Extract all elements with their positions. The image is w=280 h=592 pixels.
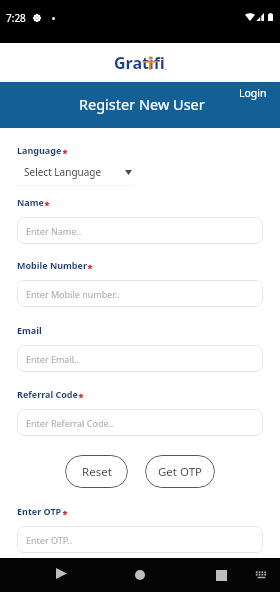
staticText: Select Language <box>24 165 102 179</box>
staticText: Language <box>17 144 62 156</box>
button[interactable]: Reset <box>65 455 128 488</box>
button[interactable]: Enter Name.. <box>17 217 263 244</box>
staticText: . <box>165 63 167 73</box>
staticText: Mobile Number <box>17 259 87 271</box>
staticText: Login <box>239 86 267 100</box>
button[interactable]: Back <box>47 559 75 587</box>
button[interactable]: Login <box>239 82 280 100</box>
button[interactable]: Enter Email.. <box>17 345 263 372</box>
staticText: Name <box>17 196 44 208</box>
staticText: Email <box>17 324 42 336</box>
button[interactable]: Select Language <box>17 165 133 179</box>
staticText: 7:28 <box>6 11 26 25</box>
button[interactable]: Keyboard <box>247 561 275 589</box>
staticText: Enter Mobile number.. <box>26 288 120 300</box>
staticText: Register New User <box>79 94 205 114</box>
button[interactable]: Recents <box>207 561 235 589</box>
button[interactable]: Enter Referral Code.. <box>17 409 263 436</box>
staticText: Get OTP <box>158 464 202 480</box>
staticText: Enter OTP.. <box>26 534 72 546</box>
button[interactable]: Get OTP <box>145 455 215 488</box>
staticText: Enter OTP <box>17 505 62 517</box>
staticText: Enter Email.. <box>26 353 79 365</box>
button[interactable]: Enter OTP.. <box>17 526 263 553</box>
staticText: Enter Name.. <box>26 225 82 237</box>
button[interactable]: Home <box>126 561 154 589</box>
staticText: Referral Code <box>17 388 78 400</box>
staticText: Enter Referral Code.. <box>26 417 114 429</box>
staticText: Gratifi <box>114 52 165 74</box>
staticText: Reset <box>82 464 112 480</box>
button[interactable]: Enter Mobile number.. <box>17 280 263 307</box>
